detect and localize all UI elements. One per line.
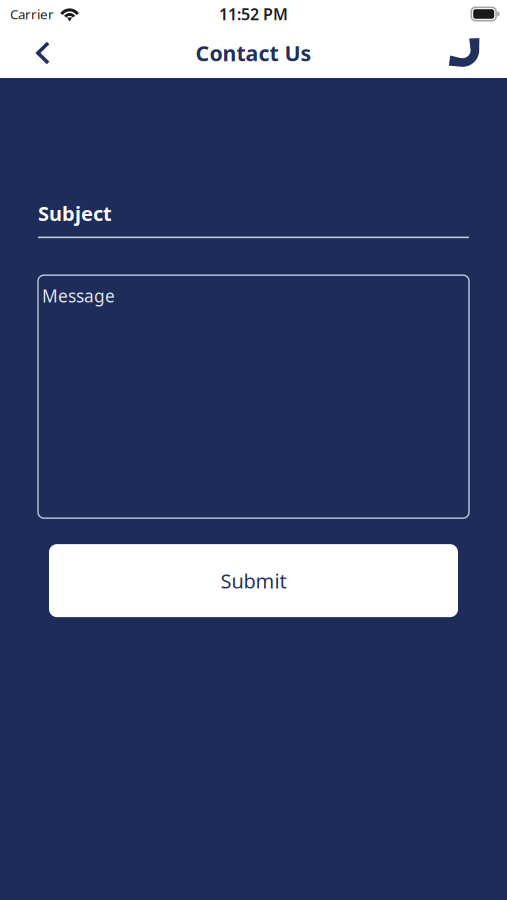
staticText: Submit (220, 567, 286, 594)
button[interactable]: Call (442, 28, 486, 78)
staticText: Subject (38, 200, 112, 227)
button[interactable]: Back (21, 28, 65, 78)
staticText: Contact Us (195, 39, 311, 67)
staticText: 11:52 PM (219, 3, 288, 25)
staticText: Carrier (10, 5, 54, 23)
button[interactable]: Submit (49, 544, 458, 617)
staticText: Message (42, 284, 115, 307)
